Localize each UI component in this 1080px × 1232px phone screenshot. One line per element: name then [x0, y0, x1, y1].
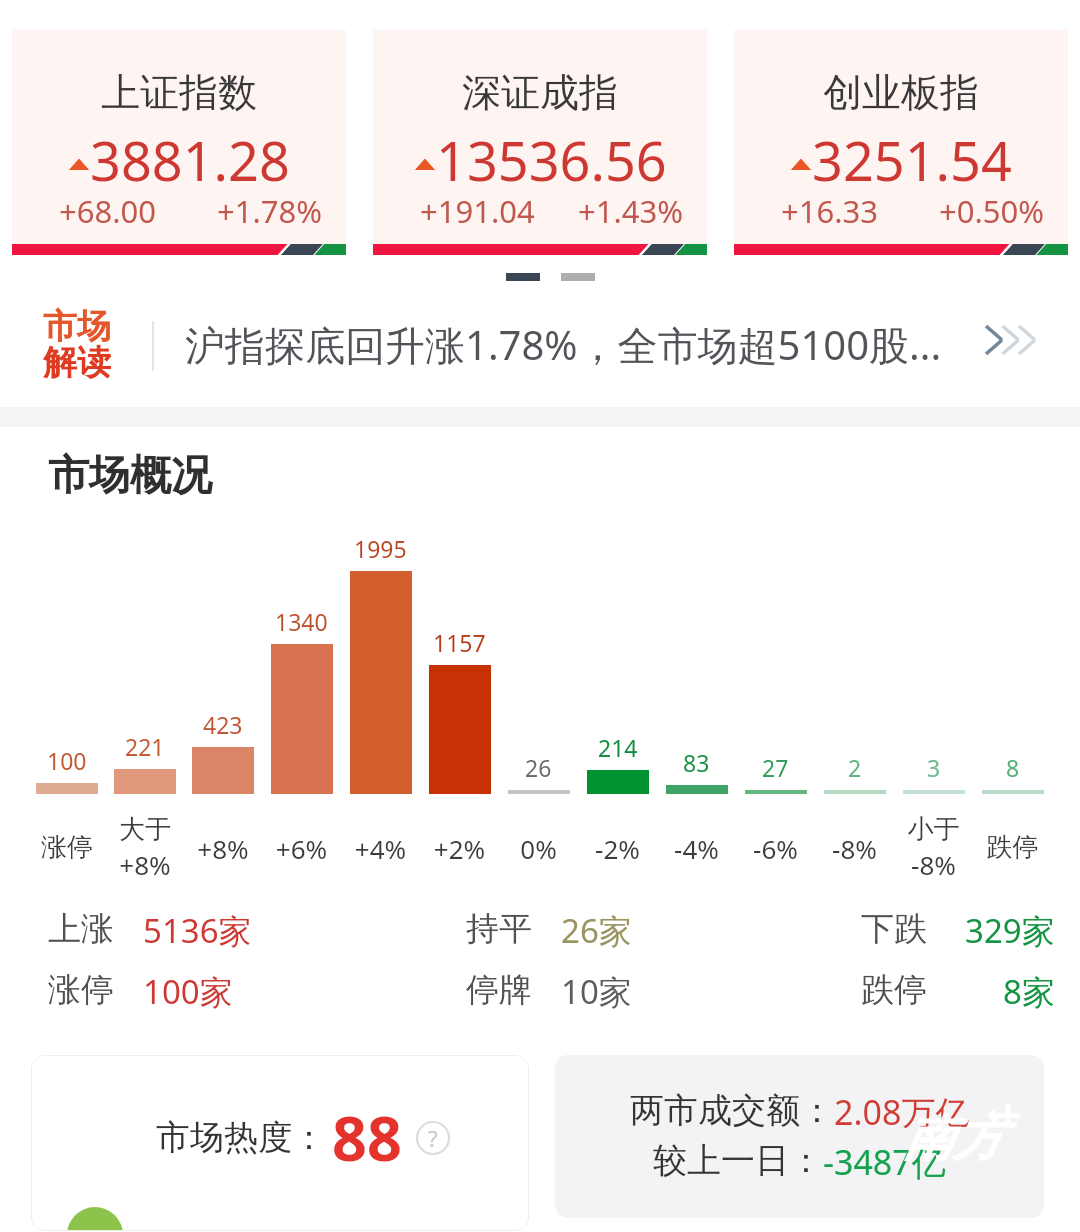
staticText: +68.00: [59, 190, 156, 232]
staticText: 88: [332, 1096, 402, 1179]
button[interactable]: 市场热度：: [31, 1055, 529, 1231]
staticText: 214: [598, 732, 638, 763]
staticText: -8%: [815, 831, 894, 866]
staticText: 市场概况: [48, 450, 212, 502]
staticText: +: [995, 1083, 1022, 1146]
staticText: 市场: [43, 305, 111, 348]
staticText: 较上一日：: [653, 1139, 823, 1182]
staticText: +191.04: [420, 190, 535, 232]
staticText: 329家: [965, 908, 1055, 953]
staticText: +0.50%: [939, 190, 1044, 232]
button[interactable]: 市场: [0, 295, 1080, 399]
staticText: 涨停: [48, 969, 114, 1011]
staticText: +1.78%: [217, 190, 322, 232]
staticText: 100: [47, 745, 87, 776]
staticText: 上证指数: [101, 68, 257, 117]
staticText: 27: [762, 752, 789, 783]
button[interactable]: 上证指数: [12, 30, 346, 255]
staticText: +8%: [184, 831, 262, 866]
staticText: 100家: [143, 969, 233, 1014]
staticText: +4%: [341, 831, 420, 866]
staticText: 下跌: [861, 908, 927, 950]
staticText: -2%: [578, 831, 657, 866]
staticText: +6%: [262, 831, 341, 866]
staticText: 0%: [499, 831, 578, 866]
staticText: 持平: [466, 908, 532, 950]
staticText: +2%: [420, 831, 499, 866]
staticText: 2: [848, 752, 862, 783]
staticText: +16.33: [781, 190, 878, 232]
staticText: 跌停: [861, 969, 927, 1011]
staticText: 大于: [106, 813, 184, 846]
staticText: 上涨: [48, 908, 114, 950]
staticText: 423: [203, 709, 243, 740]
staticText: 8家: [1003, 969, 1055, 1014]
staticText: 13536.56: [436, 123, 667, 197]
button[interactable]: 创业板指: [734, 30, 1068, 255]
other: More market interpretation: [984, 325, 1038, 355]
staticText: 创业板指: [823, 68, 979, 117]
staticText: +8%: [106, 847, 184, 882]
staticText: 两市成交额：: [630, 1089, 834, 1132]
staticText: -6%: [736, 831, 815, 866]
staticText: 1157: [433, 627, 486, 658]
staticText: -3487亿: [823, 1139, 946, 1185]
staticText: 深证成指: [462, 68, 618, 117]
staticText: 1340: [275, 606, 328, 637]
staticText: -4%: [657, 831, 736, 866]
staticText: 26: [525, 752, 552, 783]
staticText: 221: [125, 731, 165, 762]
staticText: 停牌: [466, 969, 532, 1011]
staticText: 5136家: [143, 908, 252, 953]
staticText: ?: [428, 1123, 438, 1153]
staticText: 3251.54: [812, 123, 1012, 197]
staticText: 沪指探底回升涨1.78%，全市场超5100股...: [185, 317, 942, 372]
staticText: 1995: [354, 533, 407, 564]
staticText: 南方: [903, 1107, 1003, 1170]
staticText: 83: [683, 747, 710, 778]
staticText: +1.43%: [578, 190, 683, 232]
button[interactable]: 两市成交额：: [555, 1055, 1044, 1218]
staticText: 26家: [561, 908, 632, 953]
staticText: 市场热度：: [156, 1116, 326, 1159]
button[interactable]: 深证成指: [373, 30, 707, 255]
staticText: 3: [927, 752, 941, 783]
staticText: 10家: [561, 969, 632, 1014]
staticText: 小于: [894, 813, 973, 846]
staticText: 解读: [43, 341, 111, 384]
staticText: 8: [1006, 752, 1020, 783]
staticText: 2.08万亿: [834, 1089, 970, 1135]
staticText: 跌停: [973, 831, 1052, 864]
staticText: -8%: [894, 847, 973, 882]
staticText: 3881.28: [90, 123, 290, 197]
staticText: 涨停: [28, 831, 106, 864]
